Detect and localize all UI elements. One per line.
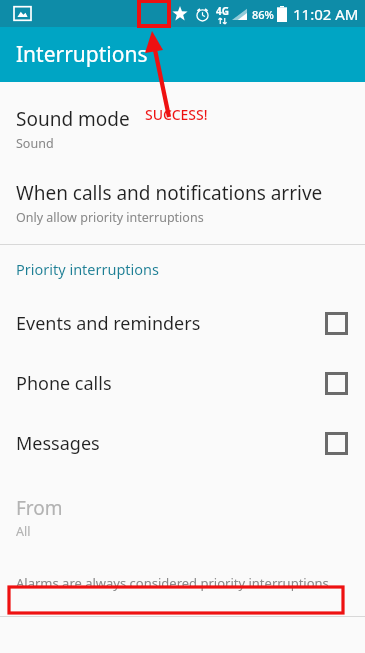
staticText: From <box>16 495 63 521</box>
button[interactable]: Phone calls <box>0 353 365 413</box>
button[interactable]: When calls and notifications arrive <box>0 156 365 230</box>
button[interactable]: Messages <box>0 413 365 473</box>
staticText: All <box>16 523 31 540</box>
button[interactable]: From <box>0 495 365 540</box>
staticText: Alarms are always considered priority in… <box>16 574 333 592</box>
staticText: 11:02 AM <box>293 4 359 24</box>
staticText: Events and reminders <box>16 311 325 336</box>
button[interactable]: Events and reminders <box>0 293 365 353</box>
other: Events and reminders <box>325 312 348 335</box>
other: Phone calls <box>325 372 348 395</box>
other: Messages <box>325 432 348 455</box>
staticText: Messages <box>16 431 325 456</box>
staticText: Sound mode <box>16 106 130 132</box>
staticText: Interruptions <box>16 40 148 69</box>
staticText: 86% <box>252 7 274 22</box>
staticText: Only allow priority interruptions <box>16 209 204 226</box>
staticText: Priority interruptions <box>16 259 160 279</box>
staticText: Phone calls <box>16 371 325 396</box>
staticText: Sound <box>16 135 54 152</box>
staticText: When calls and notifications arrive <box>16 180 323 206</box>
staticText: 4G <box>216 4 229 18</box>
staticText: SUCCESS! <box>145 105 208 124</box>
button[interactable]: Sound mode <box>0 90 365 156</box>
